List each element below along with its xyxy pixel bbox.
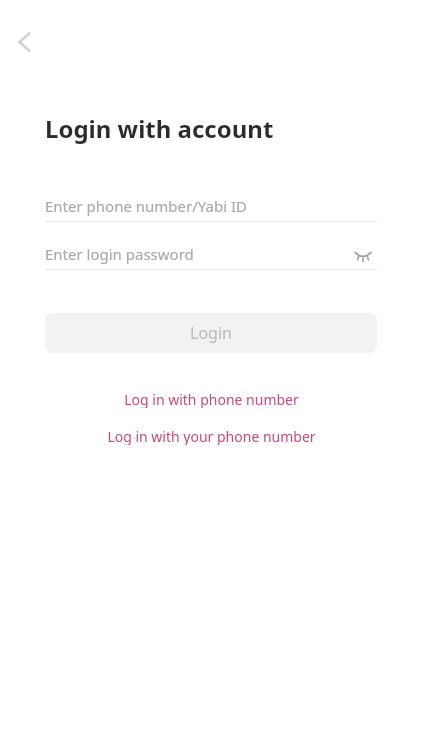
staticText: Enter login password — [45, 244, 194, 264]
button[interactable]: Login — [45, 313, 377, 353]
button[interactable]: Log in with phone number — [116, 388, 307, 410]
button[interactable]: Show password — [349, 240, 377, 268]
staticText: Log in with your phone number — [107, 427, 316, 445]
staticText: Log in with phone number — [124, 390, 299, 408]
staticText: Enter phone number/Yabi ID — [45, 196, 247, 216]
button[interactable]: Log in with your phone number — [99, 425, 324, 447]
button[interactable]: Enter phone number/Yabi ID — [45, 190, 377, 222]
button[interactable]: Back — [2, 20, 46, 64]
staticText: Login — [190, 322, 232, 344]
button[interactable]: Enter login password — [45, 238, 377, 270]
staticText: Login with account — [45, 112, 274, 145]
